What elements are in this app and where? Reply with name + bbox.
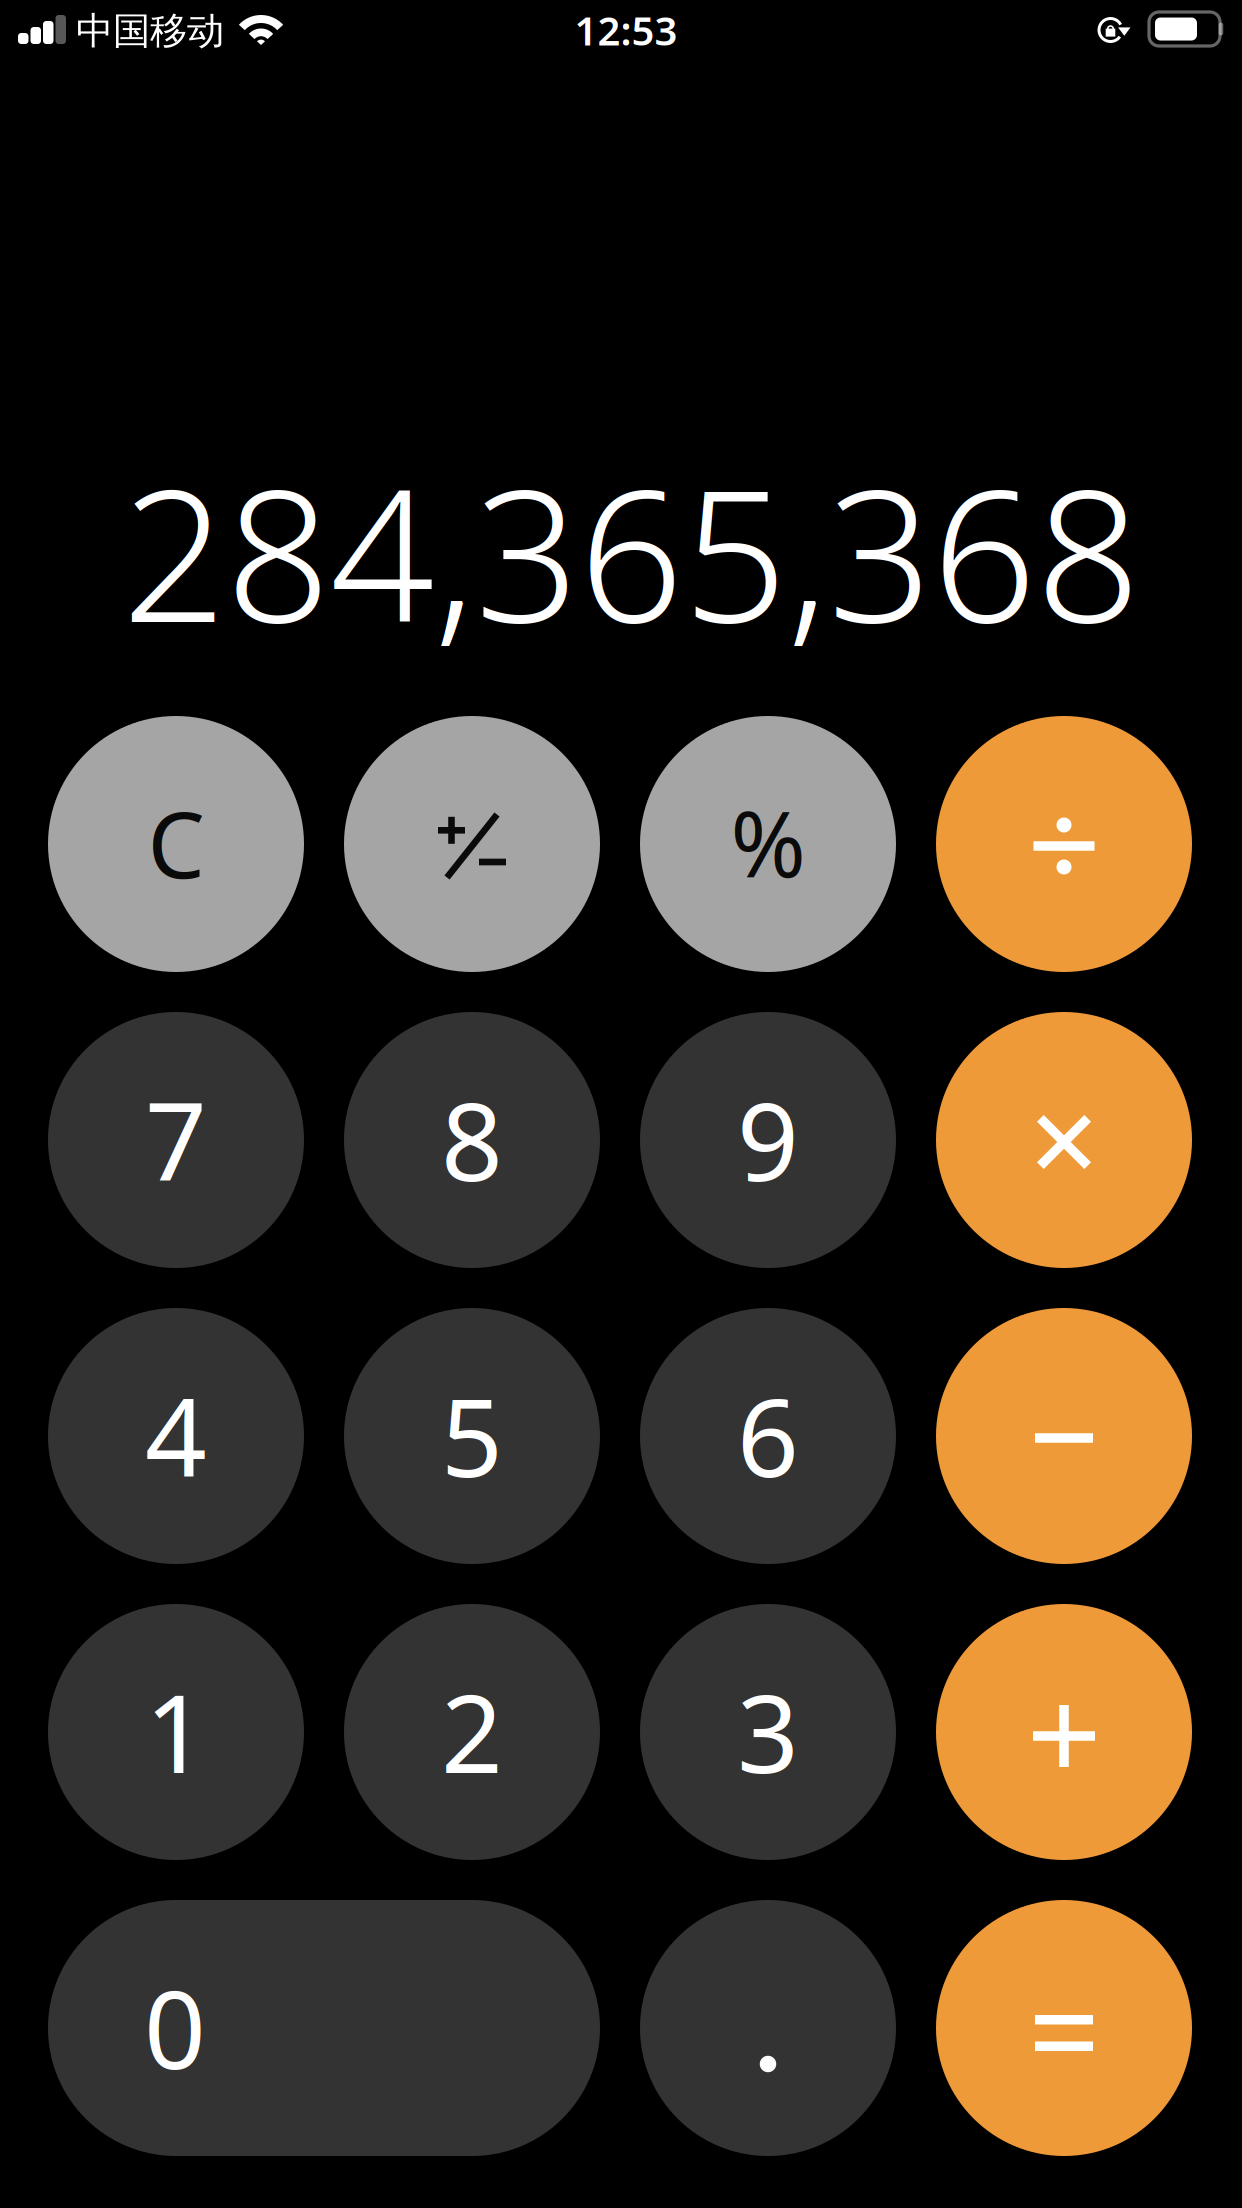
staticText: 9: [737, 1067, 799, 1211]
button[interactable]: %: [640, 716, 896, 972]
button[interactable]: Equals: [936, 1900, 1192, 2156]
button[interactable]: 2: [344, 1604, 600, 1860]
button[interactable]: 0: [48, 1900, 600, 2156]
button[interactable]: Divide: [936, 716, 1192, 972]
staticText: 12:53: [574, 3, 677, 56]
staticText: 6: [737, 1363, 799, 1507]
staticText: 3: [737, 1659, 799, 1803]
staticText: 7: [145, 1067, 207, 1211]
button[interactable]: 6: [640, 1308, 896, 1564]
staticText: 2: [441, 1659, 503, 1803]
button[interactable]: Multiply: [936, 1012, 1192, 1268]
button[interactable]: 8: [344, 1012, 600, 1268]
button[interactable]: 5: [344, 1308, 600, 1564]
staticText: 5: [441, 1363, 503, 1507]
button[interactable]: 1: [48, 1604, 304, 1860]
button[interactable]: 7: [48, 1012, 304, 1268]
button[interactable]: Decimal point: [640, 1900, 896, 2156]
button[interactable]: Plus minus: [344, 716, 600, 972]
staticText: 4: [145, 1363, 207, 1507]
button[interactable]: 9: [640, 1012, 896, 1268]
staticText: 0: [144, 1955, 206, 2099]
staticText: %: [730, 782, 805, 902]
button[interactable]: Subtract: [936, 1308, 1192, 1564]
button[interactable]: 4: [48, 1308, 304, 1564]
button[interactable]: Add: [936, 1604, 1192, 1860]
staticText: 8: [441, 1067, 503, 1211]
button[interactable]: 3: [640, 1604, 896, 1860]
staticText: 284,365,368: [122, 430, 1140, 672]
button[interactable]: C: [48, 716, 304, 972]
staticText: C: [147, 783, 204, 903]
staticText: 中国移动: [76, 8, 224, 54]
staticText: 1: [145, 1659, 207, 1803]
